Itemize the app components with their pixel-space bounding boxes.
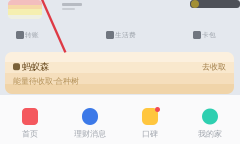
staticText: 去收取: [202, 62, 226, 72]
staticText: 生活费: [115, 31, 136, 39]
button[interactable]: Card: [62, 0, 88, 19]
staticText: 首页: [22, 129, 38, 139]
staticText: 卡包: [202, 31, 216, 39]
button[interactable]: 理财消息: [60, 95, 120, 144]
button[interactable]: Dark promo card: [190, 0, 240, 19]
button[interactable]: 首页: [0, 95, 60, 144]
button[interactable]: 蚂蚁森: [0, 52, 240, 94]
staticText: 我的家: [198, 129, 222, 139]
button[interactable]: 口碑: [120, 95, 180, 144]
button[interactable]: Promo card: [8, 0, 42, 19]
staticText: 能量待收取·合种树: [13, 75, 79, 86]
staticText: 理财消息: [74, 129, 106, 139]
staticText: 转账: [25, 31, 39, 39]
button[interactable]: 转账: [16, 29, 106, 41]
button[interactable]: 卡包: [193, 29, 240, 41]
button[interactable]: 我的家: [180, 95, 240, 144]
staticText: 口碑: [142, 129, 158, 139]
staticText: 蚂蚁森: [22, 61, 49, 72]
button[interactable]: 生活费: [106, 29, 193, 41]
